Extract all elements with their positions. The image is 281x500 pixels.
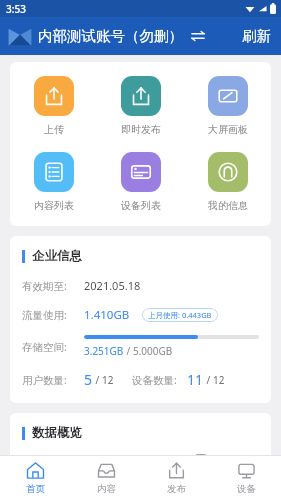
button[interactable]: 设备 [211,456,281,500]
staticText: 2021.05.18 [84,278,141,293]
button[interactable]: 首页 [0,456,71,500]
button[interactable]: Switch account [188,26,208,46]
button[interactable]: 大屏画板 [184,74,271,138]
button[interactable]: 内容列表 [10,150,97,214]
staticText: 数据概览 [32,425,82,441]
staticText: 3.251GB [84,344,124,358]
staticText: 大屏画板 [208,123,248,136]
staticText: 存储空间: [22,340,84,354]
staticText: 即时发布 [121,123,161,136]
staticText: 内部测试账号（勿删） [38,27,183,45]
staticText: 上传 [44,123,64,136]
staticText: 设备 [237,483,256,495]
staticText: 3:53 [6,2,26,16]
staticText: 内容列表 [34,199,74,212]
staticText: 设备数量: [132,373,177,387]
staticText: 上月使用: 0.443GB [148,310,212,320]
staticText: 刷新 [242,27,271,45]
button[interactable]: 内容 [71,456,141,500]
button[interactable]: 即时发布 [97,74,184,138]
button[interactable]: 我的信息 [184,150,271,214]
staticText: 发布 [167,483,186,495]
staticText: 企业信息 [32,248,82,264]
staticText: 1.410GB [84,307,130,323]
staticText: 流量使用: [22,308,84,322]
staticText: / 5.000GB [124,344,173,358]
staticText: 有效期至: [22,279,84,293]
button[interactable]: 设备列表 [97,150,184,214]
button[interactable]: 刷新 [232,21,281,51]
staticText: / 12 [204,373,225,387]
staticText: 首页 [26,483,45,495]
button[interactable]: 发布 [141,456,211,500]
button[interactable]: 上传 [10,74,97,138]
staticText: 内容 [97,483,116,495]
staticText: 设备列表 [121,199,161,212]
staticText: 我的信息 [208,199,248,212]
staticText: 用户数量: [22,373,84,387]
staticText: 11 [187,370,204,389]
staticText: 5 [84,370,93,389]
staticText: / 12 [93,373,114,387]
